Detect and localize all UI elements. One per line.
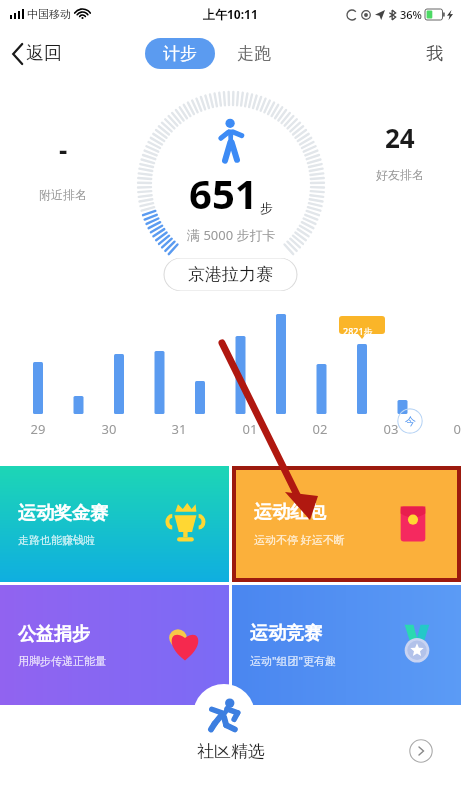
staticText: 02 xyxy=(305,420,335,438)
staticText: 运动不停 好运不断 xyxy=(254,532,345,547)
staticText: 计步 xyxy=(163,43,197,64)
button[interactable]: Start run xyxy=(193,684,255,746)
staticText: 社区精选 xyxy=(197,741,265,762)
staticText: 中国移动 xyxy=(27,7,71,21)
staticText: 03 xyxy=(376,420,406,438)
button[interactable]: - xyxy=(28,132,98,202)
staticText: 运动"组团"更有趣 xyxy=(250,653,336,668)
button[interactable]: 公益捐步 xyxy=(0,585,229,705)
staticText: 运动竞赛 xyxy=(250,622,322,645)
staticText: 步 xyxy=(260,200,273,216)
button[interactable]: 24 xyxy=(365,120,435,182)
staticText: 返回 xyxy=(26,42,62,65)
staticText: 运动奖金赛 xyxy=(18,502,108,525)
staticText: 满 5000 步打卡 xyxy=(187,226,276,244)
button[interactable]: 运动红包 xyxy=(236,470,457,578)
staticText: 我 xyxy=(426,43,443,64)
staticText: 2821步 xyxy=(343,325,373,337)
staticText: 好友排名 xyxy=(376,167,424,182)
staticText: 走跑 xyxy=(237,43,271,64)
staticText: 36% xyxy=(400,7,422,22)
button[interactable]: 今 xyxy=(397,408,423,434)
staticText: 31 xyxy=(164,420,194,438)
staticText: 公益捐步 xyxy=(18,623,90,646)
button[interactable]: 京港拉力赛 xyxy=(163,258,298,291)
staticText: 30 xyxy=(94,420,124,438)
staticText: 用脚步传递正能量 xyxy=(18,654,106,668)
button[interactable]: 我 xyxy=(426,43,443,64)
button[interactable]: 社区精选 xyxy=(0,731,461,771)
staticText: 651 xyxy=(189,166,258,220)
staticText: 24 xyxy=(385,120,415,155)
staticText: 01 xyxy=(235,420,265,438)
staticText: 上午10:11 xyxy=(203,6,258,22)
button[interactable]: 运动竞赛 xyxy=(232,585,461,705)
staticText: 走路也能赚钱啦 xyxy=(18,533,95,547)
button[interactable]: 计步 xyxy=(145,38,215,69)
staticText: 29 xyxy=(23,420,53,438)
staticText: - xyxy=(59,132,68,167)
button[interactable]: 走跑 xyxy=(231,38,277,69)
button[interactable]: 运动奖金赛 xyxy=(0,466,229,582)
staticText: 今 xyxy=(405,414,416,428)
staticText: 04 xyxy=(446,420,461,438)
button[interactable]: 返回 xyxy=(12,42,62,65)
staticText: 附近排名 xyxy=(39,187,87,202)
staticText: 京港拉力赛 xyxy=(188,264,273,285)
staticText: 运动红包 xyxy=(254,501,326,524)
